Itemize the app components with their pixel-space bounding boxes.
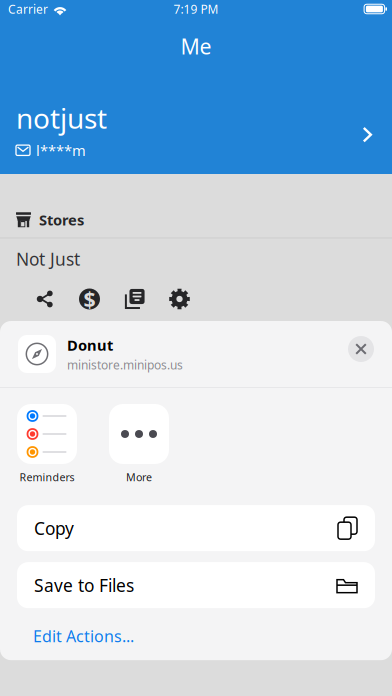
staticText: Edit Actions...	[33, 625, 134, 647]
button[interactable]: Copy	[17, 505, 375, 551]
button[interactable]: Share	[34, 288, 55, 309]
button[interactable]: notjust	[0, 99, 392, 160]
staticText: notjust	[16, 99, 107, 136]
staticText: Not Just	[16, 247, 80, 270]
staticText: ministore.minipos.us	[67, 357, 183, 373]
staticText: Me	[180, 32, 211, 60]
staticText: 7:19 PM	[173, 1, 218, 17]
button[interactable]: Settings	[169, 288, 190, 309]
staticText: Copy	[34, 517, 74, 540]
button[interactable]: More	[109, 404, 169, 484]
button[interactable]: Payments	[79, 288, 100, 309]
staticText: l****m	[36, 140, 86, 160]
staticText: Reminders	[19, 470, 74, 484]
button[interactable]: Documents	[124, 288, 145, 309]
staticText: More	[126, 470, 152, 484]
button[interactable]: Reminders	[17, 404, 77, 484]
staticText: Stores	[39, 210, 84, 229]
button[interactable]: Edit Actions...	[0, 620, 392, 652]
button[interactable]: Save to Files	[17, 562, 375, 608]
staticText: $	[83, 285, 95, 313]
staticText: Save to Files	[34, 574, 134, 597]
staticText: Donut	[67, 335, 113, 355]
button[interactable]: Close	[348, 336, 374, 362]
staticText: Carrier	[8, 1, 48, 17]
